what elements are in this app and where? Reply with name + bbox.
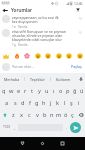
staticText: a xyxy=(5,99,9,107)
button[interactable]: Paylaş xyxy=(70,64,83,69)
button[interactable]: m xyxy=(55,109,62,121)
button[interactable]: ğ xyxy=(71,85,78,97)
staticText: e xyxy=(17,87,21,95)
button[interactable]: g xyxy=(33,97,40,109)
staticText: b xyxy=(43,111,47,119)
staticText: z xyxy=(12,111,15,119)
button[interactable]: Reaction xyxy=(54,51,63,60)
button[interactable]: Back xyxy=(1,6,9,14)
staticText: g xyxy=(35,99,39,107)
staticText: ö xyxy=(64,111,68,119)
button[interactable]: Yanıtla xyxy=(18,43,28,47)
button[interactable]: Reaction xyxy=(43,51,52,60)
button[interactable]: Like xyxy=(77,29,83,35)
staticText: j xyxy=(50,99,52,107)
button[interactable]: Sort xyxy=(74,6,82,14)
staticText: m xyxy=(56,111,62,119)
staticText: Teşekkür xyxy=(30,77,46,82)
button[interactable]: Backspace xyxy=(76,109,85,121)
staticText: r xyxy=(24,87,27,95)
button[interactable]: Merhaba xyxy=(0,73,24,85)
button[interactable]: Reaction xyxy=(12,51,21,60)
staticText: ı xyxy=(53,87,55,95)
button[interactable]: x xyxy=(17,109,25,121)
button[interactable]: ?123 xyxy=(0,121,12,133)
staticText: ?123 xyxy=(3,125,10,129)
staticText: x xyxy=(20,111,23,119)
button[interactable]: Kutlarım xyxy=(51,73,76,85)
button[interactable]: Teşekkür xyxy=(25,73,50,85)
button[interactable]: f xyxy=(26,97,33,109)
button[interactable]: Reaction xyxy=(33,51,42,60)
button[interactable]: c xyxy=(25,109,33,121)
button[interactable]: zeynepyamaan_xz bu sesi ilk kez duyuyoru… xyxy=(2,15,83,28)
button[interactable]: Voice input xyxy=(76,73,85,85)
staticText: w xyxy=(9,87,14,95)
button[interactable]: Reaction xyxy=(64,51,73,60)
button[interactable]: ü xyxy=(78,85,85,97)
button[interactable]: r xyxy=(22,85,29,97)
button[interactable]: a xyxy=(3,97,11,109)
staticText: ş xyxy=(70,99,73,107)
button[interactable]: Shift xyxy=(0,109,9,121)
button[interactable]: Reaction xyxy=(22,51,31,60)
staticText: Yorum ekle... xyxy=(12,64,34,69)
button[interactable]: Home xyxy=(37,138,48,149)
button[interactable]: k xyxy=(54,97,61,109)
button[interactable]: j xyxy=(47,97,54,109)
staticText: Merhaba xyxy=(4,77,20,82)
staticText: s xyxy=(14,99,17,107)
button[interactable]: d xyxy=(19,97,26,109)
button[interactable]: Comma xyxy=(12,121,18,133)
button[interactable]: ç xyxy=(69,109,76,121)
button[interactable]: w xyxy=(8,85,15,97)
staticText: p xyxy=(66,87,70,95)
button[interactable]: u xyxy=(43,85,50,97)
button[interactable]: Yanıtla xyxy=(18,25,28,28)
staticText: ğ xyxy=(73,87,77,95)
button[interactable]: q xyxy=(0,85,8,97)
staticText: zeynepyamaan_xz bu sesi ilk kez duyuyoru… xyxy=(12,15,59,24)
button[interactable]: Like xyxy=(77,15,83,21)
staticText: Paylaş xyxy=(71,64,82,69)
button[interactable]: Recents xyxy=(57,138,68,149)
staticText: k xyxy=(56,99,59,107)
staticText: ç xyxy=(71,111,74,119)
button[interactable]: ö xyxy=(62,109,69,121)
button[interactable]: s xyxy=(11,97,19,109)
button[interactable]: h xyxy=(40,97,47,109)
staticText: 1g xyxy=(12,43,16,47)
button[interactable]: p xyxy=(64,85,71,97)
button[interactable]: Reaction xyxy=(1,51,10,60)
staticText: Yanıtla xyxy=(18,43,28,47)
button[interactable]: y xyxy=(36,85,43,97)
button[interactable]: t xyxy=(29,85,36,97)
button[interactable]: v xyxy=(33,109,41,121)
button[interactable]: ş xyxy=(68,97,75,109)
button[interactable]: b xyxy=(41,109,48,121)
button[interactable]: e xyxy=(15,85,22,97)
staticText: f xyxy=(29,99,31,107)
button[interactable]: Send xyxy=(70,122,81,133)
staticText: , xyxy=(14,125,16,130)
staticText: u xyxy=(45,87,49,95)
button[interactable]: Back xyxy=(17,138,28,149)
button[interactable]: l xyxy=(61,97,68,109)
button[interactable]: Reaction xyxy=(75,51,84,60)
button[interactable]: n xyxy=(48,109,55,121)
button[interactable]: Yorum ekle... xyxy=(12,64,70,69)
staticText: c xyxy=(28,111,31,119)
button[interactable]: o xyxy=(57,85,64,97)
button[interactable]: elsa.vtfrl Konuşsun ve ne pişman olsunla… xyxy=(2,29,83,49)
button[interactable]: z xyxy=(9,109,17,121)
button[interactable]: i xyxy=(75,97,82,109)
staticText: ü xyxy=(80,87,84,95)
staticText: h xyxy=(42,99,46,107)
staticText: n xyxy=(50,111,54,119)
staticText: o xyxy=(59,87,63,95)
button[interactable]: ı xyxy=(50,85,57,97)
staticText: elsa.vtfrl Konuşsun ve ne pişman olsunla… xyxy=(12,29,68,42)
staticText: . xyxy=(66,125,68,130)
